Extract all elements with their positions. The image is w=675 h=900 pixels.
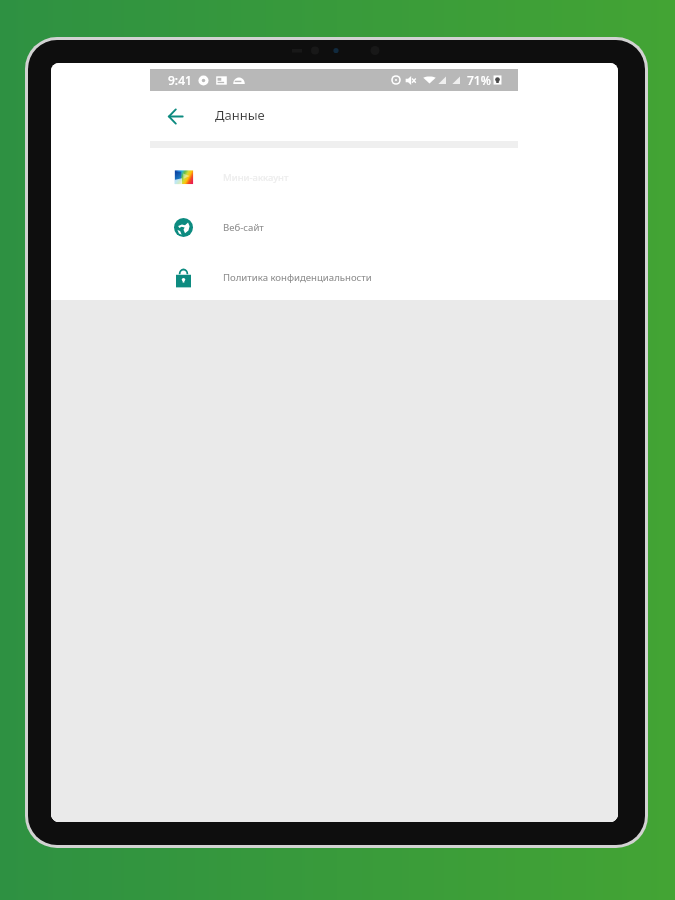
staticText: 71% xyxy=(467,72,491,88)
staticText: 9:41 xyxy=(168,72,192,88)
staticText: Данные xyxy=(215,106,265,124)
staticText: Веб-сайт xyxy=(223,221,264,234)
button[interactable]: Политика конфиденциальности xyxy=(150,252,518,302)
staticText: Мини-аккаунт xyxy=(223,171,289,184)
button[interactable]: Мини-аккаунт xyxy=(150,152,518,202)
button[interactable]: Back xyxy=(150,91,200,141)
button[interactable]: Веб-сайт xyxy=(150,202,518,252)
staticText: Политика конфиденциальности xyxy=(223,271,372,284)
